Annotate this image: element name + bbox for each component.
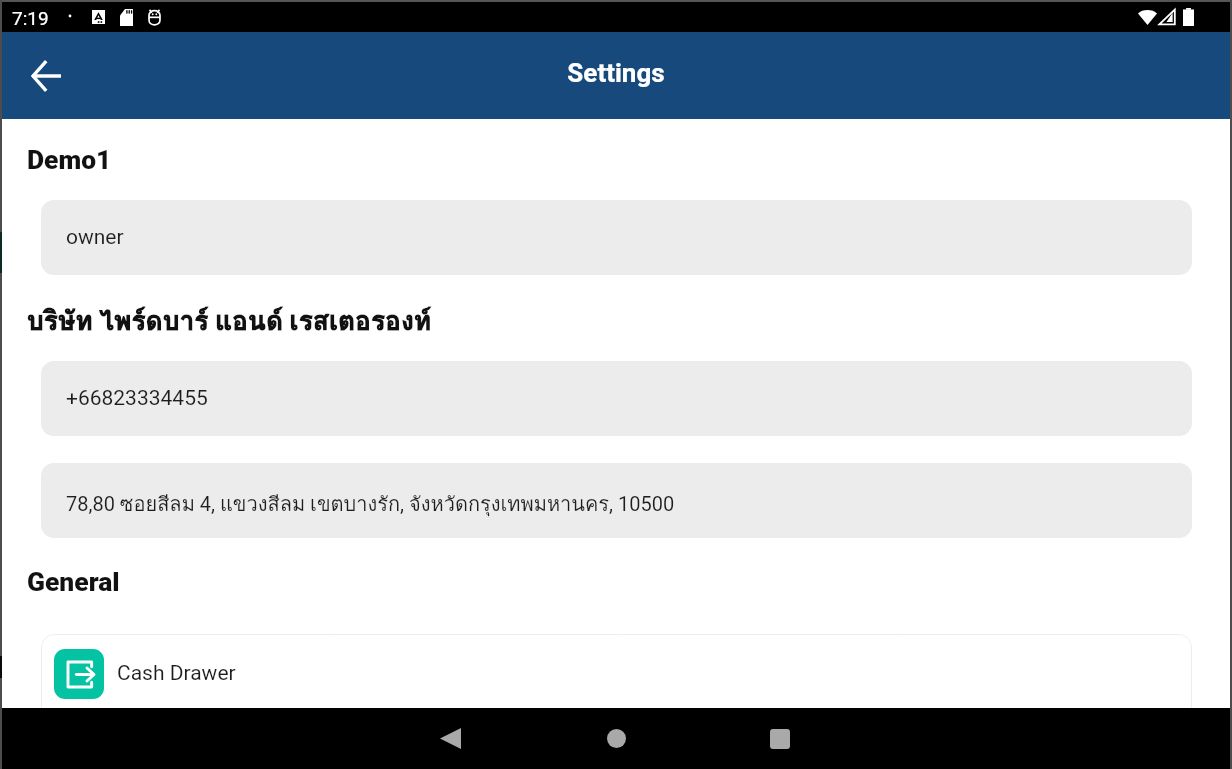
staticText: 7:19 xyxy=(12,7,49,29)
button[interactable]: owner xyxy=(41,200,1192,275)
staticText: owner xyxy=(66,225,124,250)
staticText: +66823334455 xyxy=(66,386,208,411)
staticText: General xyxy=(27,567,120,598)
staticText: บริษัท ไพร์ดบาร์ แอนด์ เรสเตอรองท์ xyxy=(27,300,432,342)
staticText: Settings xyxy=(567,58,665,88)
button[interactable]: Back xyxy=(22,52,70,100)
button[interactable]: Back xyxy=(410,708,490,769)
button[interactable]: 78,80 ซอยสีลม 4, แขวงสีลม เขตบางรัก, จัง… xyxy=(41,463,1192,538)
staticText: 78,80 ซอยสีลม 4, แขวงสีลม เขตบางรัก, จัง… xyxy=(66,488,675,520)
staticText: Cash Drawer xyxy=(117,661,236,686)
staticText: Demo1 xyxy=(27,145,112,176)
button[interactable]: +66823334455 xyxy=(41,361,1192,436)
button[interactable]: Cash Drawer xyxy=(41,634,1192,713)
button[interactable]: Recent apps xyxy=(740,708,820,769)
button[interactable]: Home xyxy=(576,708,656,769)
